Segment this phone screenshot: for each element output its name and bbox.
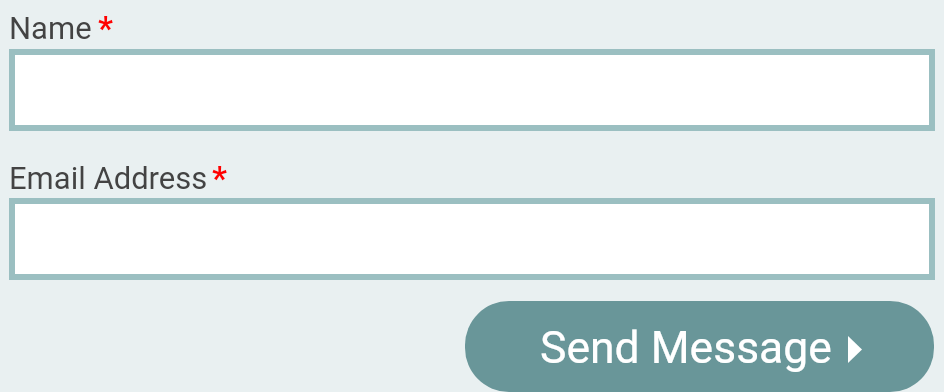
button[interactable]: Send Message	[465, 301, 934, 392]
button[interactable]: Email Address input field	[9, 198, 935, 280]
button[interactable]: Name input field	[9, 49, 935, 131]
staticText: Send Message	[540, 322, 832, 374]
staticText: Email Address	[9, 160, 208, 196]
staticText: *	[212, 159, 227, 198]
staticText: Name	[9, 10, 92, 46]
staticText: *	[98, 9, 113, 48]
